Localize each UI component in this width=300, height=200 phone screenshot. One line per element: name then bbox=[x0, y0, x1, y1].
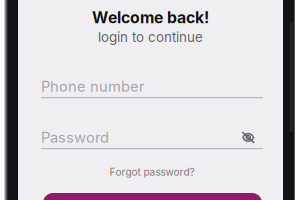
button[interactable]: Forgot password? bbox=[41, 164, 263, 180]
button[interactable]: Password bbox=[41, 130, 263, 145]
staticText: Welcome back! bbox=[92, 8, 209, 27]
staticText: Password bbox=[41, 129, 109, 146]
staticText: Forgot password? bbox=[109, 166, 194, 178]
button[interactable]: Login bbox=[43, 193, 262, 200]
staticText: Phone number bbox=[41, 78, 145, 95]
staticText: login to continue bbox=[98, 29, 203, 45]
button[interactable]: Phone number bbox=[41, 79, 263, 94]
button[interactable]: Show password bbox=[241, 131, 255, 144]
